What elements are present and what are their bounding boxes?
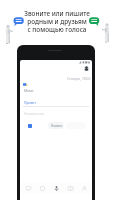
button[interactable]: Voice [50, 182, 62, 194]
button[interactable]: Calls [36, 182, 48, 194]
staticText: Привет [24, 100, 36, 105]
staticText: Маме [24, 88, 34, 93]
button[interactable]: Contacts [64, 182, 76, 194]
button[interactable]: More [78, 182, 90, 194]
button[interactable]: Send [28, 124, 32, 128]
button[interactable]: Account [84, 66, 89, 71]
staticText: Отправить как [24, 112, 44, 116]
button[interactable]: Отмена [48, 122, 64, 129]
staticText: Отмена [51, 124, 62, 128]
staticText: Звоните или пишите родным и друзьям с по… [24, 9, 90, 34]
staticText: Сегодня, 18:02 [67, 76, 91, 80]
button[interactable]: Chats [22, 182, 34, 194]
